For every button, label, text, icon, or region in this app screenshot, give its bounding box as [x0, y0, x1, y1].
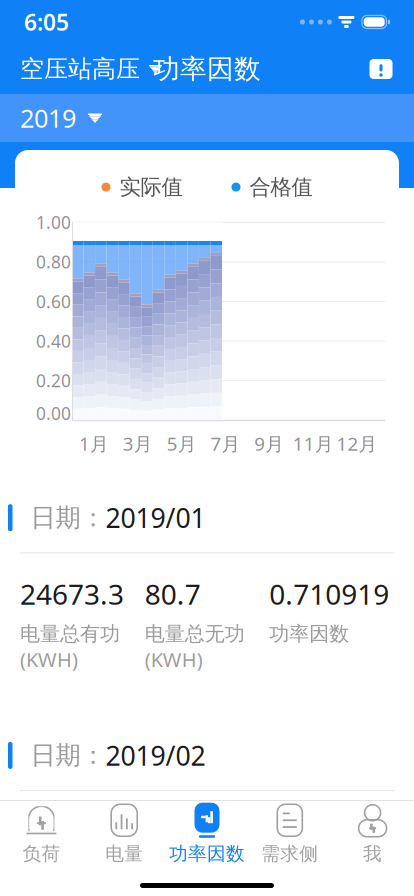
- staticText: 0.777924: [269, 813, 389, 850]
- staticText: 电量总无功(KWH): [145, 622, 245, 673]
- staticText: 需求侧: [261, 842, 318, 865]
- button[interactable]: 功率因数: [166, 801, 248, 869]
- staticText: 6:05: [24, 7, 69, 37]
- button[interactable]: 日期：: [0, 716, 414, 896]
- staticText: 电量: [105, 842, 143, 865]
- staticText: 0.80: [36, 250, 71, 273]
- staticText: 5月: [167, 431, 197, 456]
- button[interactable]: Alerts: [348, 44, 414, 94]
- staticText: 我: [363, 842, 382, 865]
- staticText: 电量总无功(KWH): [145, 859, 245, 896]
- staticText: 0.20: [36, 369, 71, 392]
- staticText: 电量总有功(KWH): [20, 622, 120, 673]
- button[interactable]: 日期：: [0, 478, 414, 716]
- staticText: 功率因数: [269, 622, 349, 646]
- staticText: 9月: [254, 431, 284, 456]
- staticText: 11月: [293, 431, 334, 456]
- staticText: 3月: [123, 431, 153, 456]
- staticText: 7月: [210, 431, 240, 456]
- staticText: 0.60: [36, 290, 71, 313]
- staticText: 16680: [20, 813, 100, 850]
- staticText: 2019/01: [105, 500, 205, 535]
- staticText: 负荷: [22, 842, 60, 865]
- button[interactable]: 空压站高压: [0, 44, 182, 94]
- button[interactable]: 负荷: [0, 801, 83, 869]
- staticText: 24673.3: [20, 575, 124, 613]
- staticText: 12月: [337, 431, 378, 456]
- staticText: 1月: [79, 431, 109, 456]
- staticText: 日期：: [30, 740, 105, 771]
- button[interactable]: 2019: [0, 94, 122, 142]
- staticText: 日期：: [30, 502, 105, 533]
- staticText: 2019: [20, 101, 76, 135]
- button[interactable]: 我: [331, 801, 414, 869]
- staticText: 0.00: [36, 402, 71, 425]
- staticText: 1.00: [36, 211, 71, 234]
- button[interactable]: 需求侧: [248, 801, 331, 869]
- staticText: 功率因数: [169, 842, 245, 865]
- staticText: 功率因数: [153, 53, 261, 85]
- staticText: 实际值: [119, 174, 182, 200]
- button[interactable]: 电量: [83, 801, 166, 869]
- staticText: 2019/02: [105, 738, 205, 773]
- staticText: 0.710919: [269, 575, 389, 613]
- staticText: 功率因数: [269, 859, 349, 884]
- staticText: 合格值: [249, 174, 312, 200]
- staticText: 0.40: [36, 329, 71, 352]
- staticText: 空压站高压: [20, 54, 140, 84]
- staticText: 80.7: [145, 575, 201, 613]
- staticText: 电量总有功(KWH): [20, 859, 120, 896]
